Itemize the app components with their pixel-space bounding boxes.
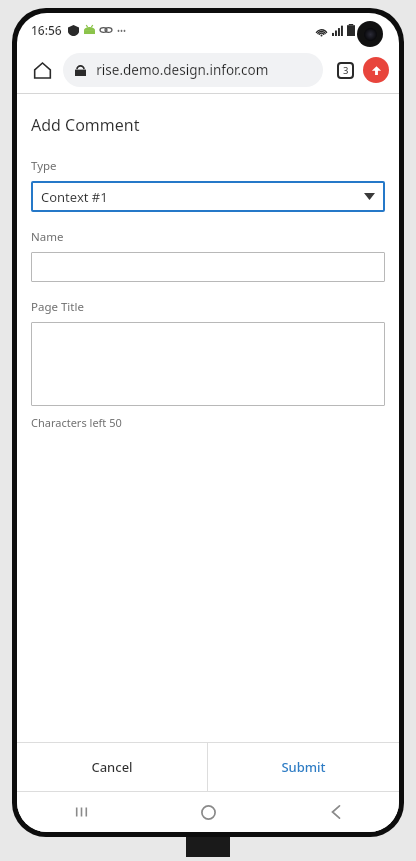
- staticText: •••: [117, 25, 127, 36]
- staticText: 16:56: [31, 22, 62, 38]
- staticText: Characters left 50: [31, 415, 122, 430]
- button[interactable]: Tabs: [331, 56, 359, 84]
- button[interactable]: Context #1: [31, 181, 385, 212]
- button[interactable]: Home: [27, 55, 57, 85]
- button[interactable]: Submit: [208, 743, 399, 791]
- button[interactable]: [31, 322, 385, 406]
- button[interactable]: Cancel: [17, 743, 207, 791]
- button[interactable]: Back: [272, 792, 399, 832]
- staticText: Cancel: [91, 758, 133, 776]
- button[interactable]: rise.demo.design.infor.com: [63, 53, 323, 87]
- button[interactable]: Home: [145, 792, 272, 832]
- staticText: Submit: [281, 758, 326, 776]
- staticText: Name: [31, 229, 64, 245]
- staticText: 3: [343, 64, 349, 77]
- staticText: Context #1: [41, 188, 108, 206]
- button[interactable]: [31, 252, 385, 282]
- button[interactable]: Update: [363, 57, 389, 83]
- button[interactable]: Recent apps: [17, 792, 145, 832]
- staticText: Page Title: [31, 299, 84, 315]
- staticText: Type: [31, 158, 57, 174]
- staticText: rise.demo.design.infor.com: [94, 61, 269, 79]
- staticText: Add Comment: [31, 114, 140, 136]
